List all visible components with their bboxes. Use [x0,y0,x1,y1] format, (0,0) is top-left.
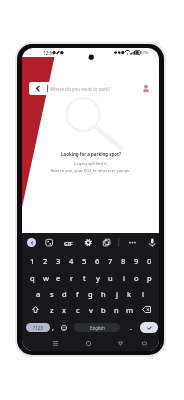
staticText: a [36,289,41,299]
button[interactable]: 5 [78,252,91,269]
staticText: ?123 [33,325,43,331]
staticText: 82% [140,50,149,56]
staticText: Legacy will find it. [74,161,108,166]
staticText: 12:59 [43,50,55,56]
staticText: English [90,325,105,331]
button[interactable]: Emoji [59,319,69,336]
button[interactable]: Profile [141,84,151,94]
button[interactable]: s [45,285,58,302]
staticText: g [88,289,93,299]
button[interactable]: 9 [130,252,143,269]
button[interactable]: l [136,285,149,302]
button[interactable]: n [110,301,123,318]
staticText: f [76,289,79,299]
button[interactable]: Back [27,238,36,247]
button[interactable]: Where do you want to park? [29,82,156,95]
button[interactable]: Shift [25,301,45,318]
button[interactable]: o [130,269,143,286]
button[interactable]: Back [114,337,126,349]
staticText: x [62,305,67,315]
staticText: b [101,305,106,315]
button[interactable]: r [65,269,78,286]
button[interactable]: Enter [140,322,158,333]
button[interactable]: Recents [49,337,61,349]
staticText: n [114,305,119,315]
button[interactable]: Backspace [136,301,156,318]
staticText: w [43,273,49,283]
button[interactable]: . [126,319,135,336]
button[interactable]: 6 [91,252,104,269]
button[interactable]: ?123 [26,323,50,332]
staticText: c [76,305,80,315]
button[interactable]: Home [82,337,94,349]
button[interactable]: b [97,301,110,318]
staticText: 0 [147,256,152,266]
button[interactable]: 1 [25,252,39,269]
button[interactable]: j [110,285,123,302]
button[interactable]: i [117,269,130,286]
staticText: 6 [95,256,100,266]
staticText: r [70,273,74,283]
staticText: 3 [56,256,61,266]
button[interactable]: Hide keyboard [138,337,150,349]
staticText: m [126,305,134,315]
button[interactable]: v [84,301,97,318]
staticText: Looking for a parking spot? [61,151,121,157]
button[interactable]: 2 [39,252,52,269]
staticText: l [142,289,144,299]
button[interactable]: a [32,285,45,302]
button[interactable]: e [52,269,65,286]
staticText: y [96,273,100,283]
button[interactable]: t [78,269,91,286]
button[interactable]: u [104,269,117,286]
staticText: h [101,289,106,299]
staticText: Where do you want to park? [50,86,111,92]
staticText: Next to you, your POI, or wherever you g… [50,168,131,173]
staticText: q [30,273,35,283]
staticText: p [147,273,152,283]
staticText: 4 [69,256,74,266]
button[interactable]: c [71,301,84,318]
button[interactable]: d [58,285,71,302]
staticText: 7 [108,256,113,266]
staticText: 9 [134,256,139,266]
staticText: v [89,305,93,315]
button[interactable]: 7 [104,252,117,269]
staticText: 1 [30,256,35,266]
staticText: 5 [82,256,87,266]
button[interactable]: z [45,301,58,318]
button[interactable]: p [143,269,156,286]
staticText: o [134,273,139,283]
staticText: 2 [43,256,48,266]
button[interactable]: 3 [52,252,65,269]
button[interactable]: k [123,285,136,302]
button[interactable]: , [48,319,57,336]
staticText: z [50,305,54,315]
staticText: s [50,289,54,299]
staticText: GIF [64,240,73,247]
button[interactable]: y [91,269,104,286]
button[interactable]: g [84,285,97,302]
staticText: e [56,273,61,283]
staticText: 8 [121,256,126,266]
button[interactable]: q [25,269,39,286]
staticText: t [83,273,86,283]
staticText: d [62,289,67,299]
staticText: i [123,273,125,283]
button[interactable]: 0 [143,252,156,269]
staticText: , [52,323,54,333]
button[interactable]: 4 [65,252,78,269]
button[interactable]: w [39,269,52,286]
button[interactable]: f [71,285,84,302]
button[interactable]: h [97,285,110,302]
staticText: u [108,273,113,283]
staticText: k [127,289,132,299]
button[interactable]: m [123,301,136,318]
staticText: . [130,323,132,333]
button[interactable]: English [74,323,120,332]
button[interactable]: x [58,301,71,318]
button[interactable]: 8 [117,252,130,269]
staticText: j [116,289,118,299]
